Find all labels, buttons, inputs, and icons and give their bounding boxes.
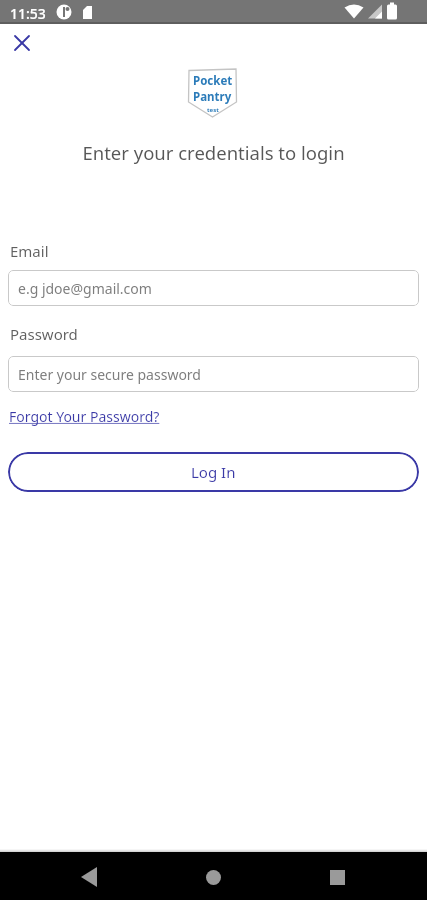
staticText: Pocket [193, 73, 233, 89]
staticText: Password [10, 324, 78, 344]
staticText: Enter your credentials to login [0, 140, 427, 165]
button[interactable] [189, 852, 237, 900]
staticText: Log In [191, 462, 236, 482]
button[interactable]: Enter your secure password [8, 356, 419, 392]
button[interactable]: Log In [8, 452, 419, 492]
button[interactable] [65, 852, 113, 900]
staticText: Enter your secure password [18, 365, 201, 384]
button[interactable] [313, 852, 361, 900]
staticText: 11:53 [10, 4, 46, 23]
staticText: Pantry [193, 89, 232, 105]
staticText: test [207, 106, 219, 114]
button[interactable]: e.g jdoe@gmail.com [8, 270, 419, 306]
button[interactable] [8, 29, 36, 57]
staticText: Email [10, 241, 49, 261]
button[interactable]: Forgot Your Password? [9, 407, 160, 426]
staticText: e.g jdoe@gmail.com [18, 279, 152, 298]
